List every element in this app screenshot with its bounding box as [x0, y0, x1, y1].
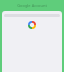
- staticText: Google Account: [17, 3, 47, 8]
